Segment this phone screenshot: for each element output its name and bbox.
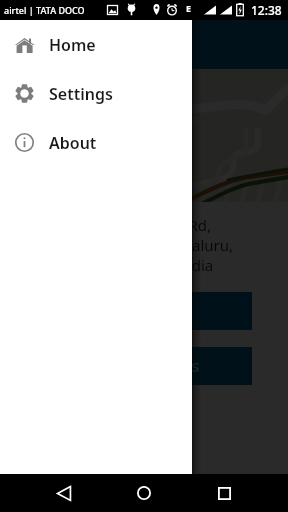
staticText: Indiranagar, HAL II, Bengaluru, bbox=[16, 235, 234, 255]
button[interactable]: Home bbox=[122, 474, 166, 512]
button[interactable]: Get directions bbox=[16, 292, 252, 330]
button[interactable]: Recent apps bbox=[202, 474, 246, 512]
staticText: Karnataka, Bengaluru, India bbox=[16, 255, 214, 275]
button[interactable]: Settings bbox=[0, 69, 192, 118]
staticText: airtel | TATA DOCO bbox=[4, 4, 85, 16]
button[interactable]: Back bbox=[42, 474, 86, 512]
staticText: E bbox=[186, 2, 192, 14]
button[interactable]: Home bbox=[0, 20, 192, 69]
staticText: Settings bbox=[49, 83, 113, 105]
button[interactable]: See all 48 reviews bbox=[16, 347, 252, 385]
staticText: Home bbox=[49, 34, 96, 56]
staticText: #123, 2nd Main, 80 Feet Rd, bbox=[16, 215, 212, 235]
staticText: About bbox=[49, 132, 97, 154]
staticText: 12:38 bbox=[251, 2, 282, 18]
staticText: See all 48 reviews bbox=[68, 355, 200, 377]
button[interactable]: About bbox=[0, 118, 192, 167]
